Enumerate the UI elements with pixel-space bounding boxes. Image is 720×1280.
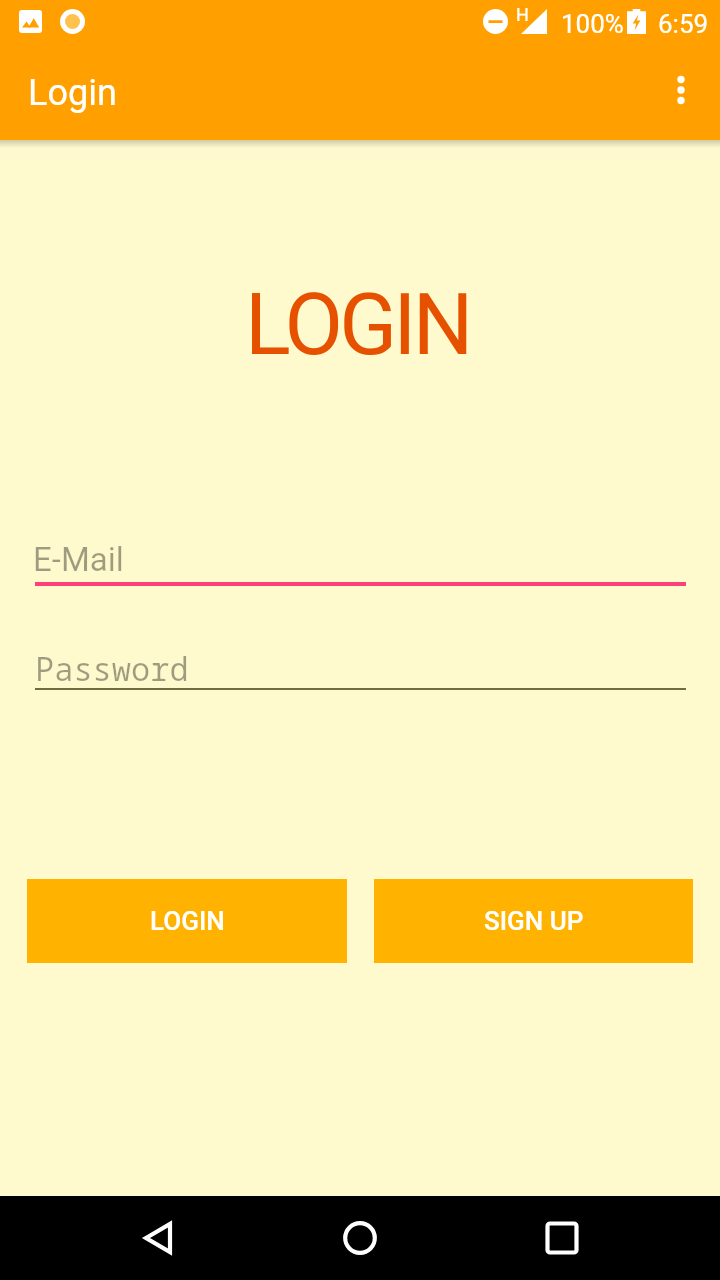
- staticText: SIGN UP: [484, 906, 584, 936]
- staticText: E-Mail: [33, 540, 124, 579]
- button[interactable]: SIGN UP: [374, 879, 693, 963]
- staticText: 6:59: [658, 9, 709, 39]
- staticText: LOGIN: [150, 906, 225, 936]
- staticText: Login: [28, 72, 117, 114]
- staticText: H: [516, 4, 529, 25]
- button[interactable]: Recent apps: [514, 1196, 610, 1280]
- button[interactable]: LOGIN: [27, 879, 347, 963]
- staticText: Password: [35, 647, 189, 691]
- staticText: 100%: [561, 9, 624, 39]
- button[interactable]: More options: [653, 62, 709, 118]
- button[interactable]: Back: [110, 1196, 206, 1280]
- button[interactable]: Home: [312, 1196, 408, 1280]
- staticText: LOGIN: [245, 275, 470, 375]
